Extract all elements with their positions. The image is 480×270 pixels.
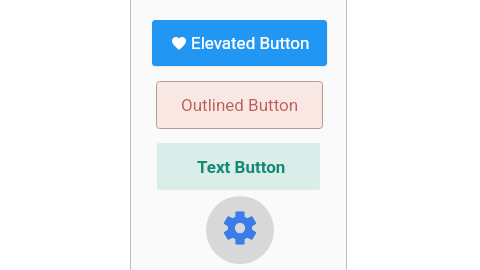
staticText: Text Button [197,157,286,177]
button[interactable]: Settings [206,196,274,264]
button[interactable]: Text Button [157,143,320,190]
staticText: Elevated Button [191,33,310,53]
button[interactable]: Elevated Button [152,20,327,66]
staticText: Outlined Button [181,95,299,115]
button[interactable]: Outlined Button [156,81,323,129]
